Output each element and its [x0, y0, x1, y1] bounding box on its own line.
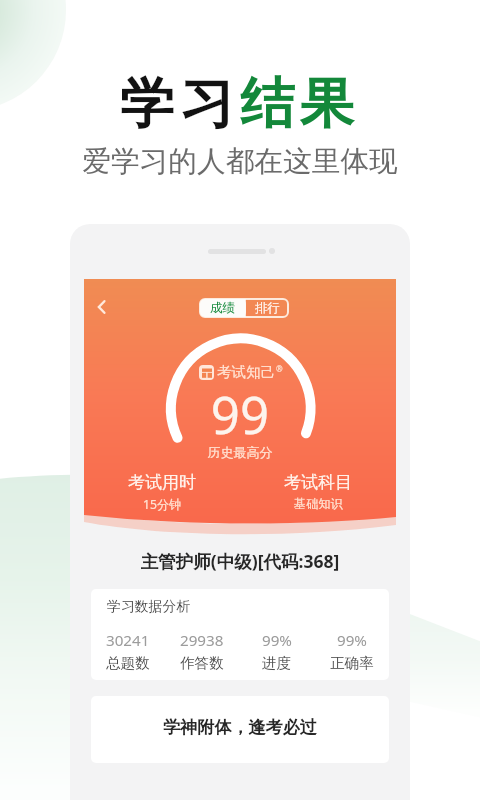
staticText: 99% [337, 630, 367, 651]
staticText: 99% [262, 630, 292, 651]
staticText: 考试用时 [128, 472, 196, 493]
staticText: 学习 [120, 70, 240, 138]
staticText: 成绩 [210, 300, 235, 316]
staticText: 考试科目 [284, 472, 352, 493]
staticText: 历史最高分 [84, 444, 396, 460]
staticText: ® [276, 363, 283, 374]
staticText: 总题数 [106, 654, 150, 672]
staticText: 学神附体，逢考必过 [163, 717, 317, 739]
staticText: 30241 [106, 630, 150, 651]
staticText: 考试知己 [217, 363, 276, 381]
staticText: 正确率 [330, 654, 374, 672]
button[interactable]: 成绩 [199, 298, 245, 318]
staticText: 99 [84, 379, 396, 448]
staticText: 排行 [255, 300, 280, 316]
button[interactable]: 排行 [245, 298, 289, 318]
staticText: 学习数据分析 [107, 598, 191, 616]
staticText: 29938 [180, 630, 224, 651]
staticText: 基础知识 [294, 496, 343, 511]
staticText: 进度 [262, 654, 291, 672]
staticText: 结果 [240, 70, 360, 138]
button[interactable]: 学习数据分析 [91, 589, 389, 680]
button[interactable]: Back [90, 295, 114, 319]
staticText: 15分钟 [143, 496, 182, 513]
staticText: 作答数 [180, 654, 224, 672]
button[interactable]: 学神附体，逢考必过 [91, 696, 389, 763]
staticText: 爱学习的人都在这里体现 [0, 143, 480, 179]
staticText: 主管护师(中级)[代码:368] [70, 549, 410, 573]
